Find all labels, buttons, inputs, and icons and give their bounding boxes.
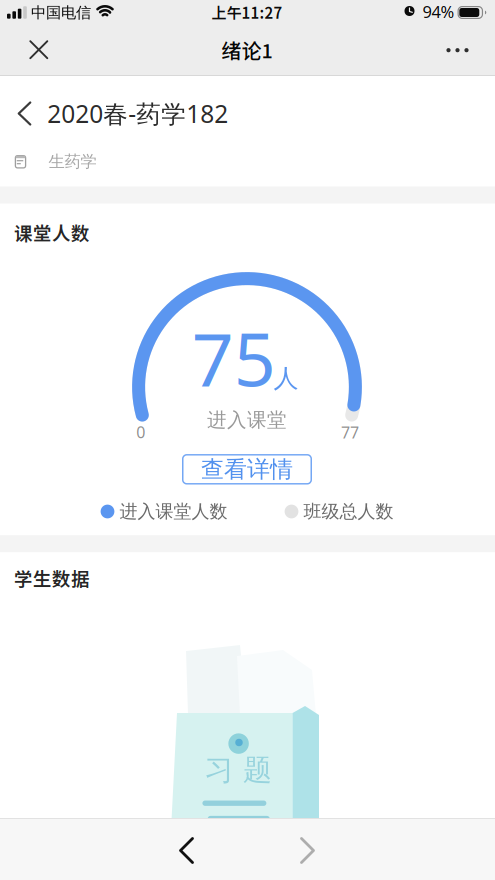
staticText: 进入课堂 <box>207 408 287 432</box>
staticText: 中国电信 <box>31 3 91 22</box>
staticText: 进入课堂人数 <box>119 500 227 523</box>
button[interactable]: 前进 <box>285 828 329 872</box>
staticText: 75 <box>192 308 276 408</box>
staticText: 生药学 <box>48 151 96 172</box>
button[interactable]: 关闭 <box>17 28 61 72</box>
staticText: 课堂人数 <box>14 219 90 246</box>
staticText: 学生数据 <box>14 565 90 591</box>
staticText: 查看详情 <box>201 455 293 484</box>
staticText: 习 <box>204 752 233 788</box>
button[interactable]: 更多 <box>435 28 479 72</box>
staticText: 0 <box>136 421 145 443</box>
staticText: 上午11:27 <box>211 1 282 23</box>
button[interactable]: 返回 <box>19 97 228 130</box>
button[interactable]: 后退 <box>164 828 208 872</box>
button[interactable]: 查看详情 <box>182 454 312 485</box>
staticText: 2020春-药学182 <box>47 97 228 130</box>
staticText: 94% <box>422 0 454 23</box>
staticText: 绪论1 <box>221 35 272 64</box>
staticText: 题 <box>243 752 272 788</box>
staticText: 77 <box>341 421 359 443</box>
staticText: 人 <box>273 363 298 394</box>
staticText: 班级总人数 <box>303 500 393 523</box>
